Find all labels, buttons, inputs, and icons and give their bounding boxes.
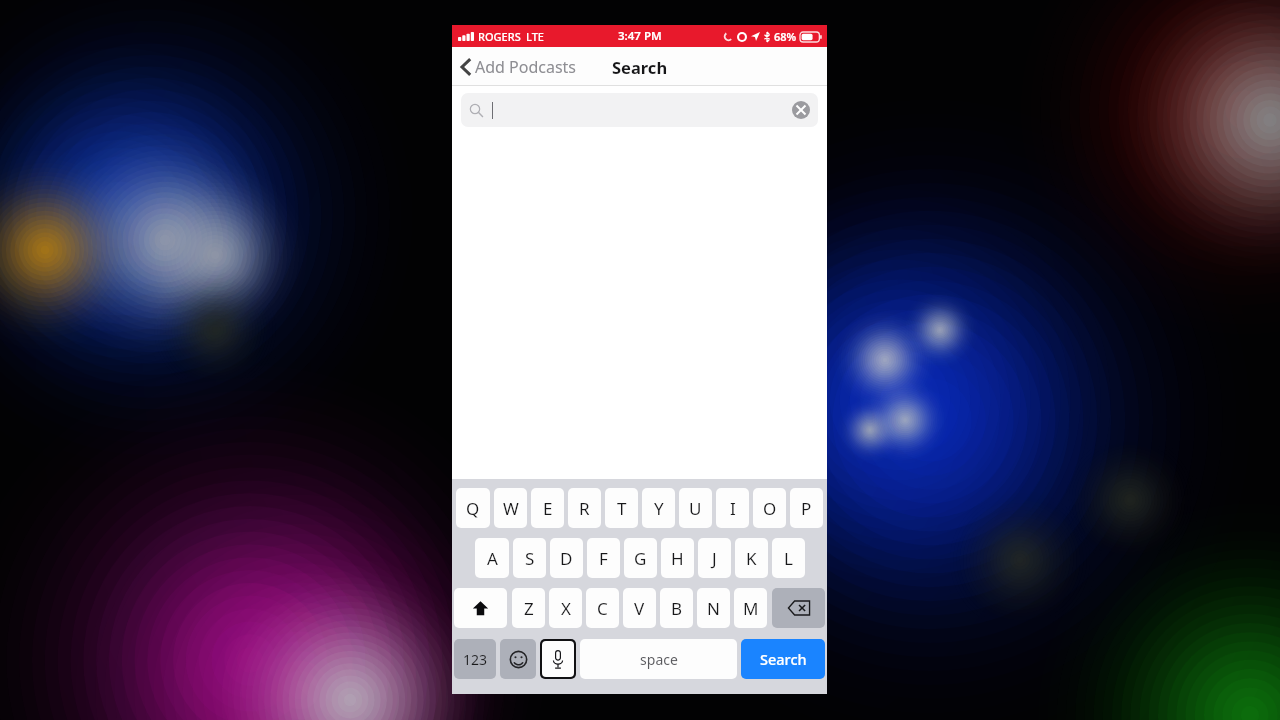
button[interactable]: Q [456, 488, 490, 528]
button[interactable]: N [697, 588, 730, 628]
button[interactable]: W [494, 488, 527, 528]
button[interactable]: R [568, 488, 601, 528]
button[interactable]: Add Podcasts [452, 47, 585, 86]
button[interactable]: I [716, 488, 749, 528]
button[interactable]: Y [642, 488, 675, 528]
staticText: Z [524, 597, 534, 620]
staticText: ROGERS [478, 29, 521, 44]
button[interactable]: B [660, 588, 693, 628]
button[interactable]: M [734, 588, 767, 628]
button[interactable]: H [661, 538, 694, 578]
staticText: G [634, 547, 647, 570]
button[interactable]: P [790, 488, 823, 528]
button[interactable]: O [753, 488, 786, 528]
button[interactable]: L [772, 538, 805, 578]
button[interactable]: space [580, 639, 737, 679]
staticText: U [689, 497, 702, 520]
staticText: F [599, 547, 608, 570]
button[interactable]: E [531, 488, 564, 528]
button[interactable]: Search [741, 639, 825, 679]
button[interactable]: G [624, 538, 657, 578]
button[interactable]: Shift [454, 588, 507, 628]
staticText: L [784, 547, 793, 570]
button[interactable]: 123 [454, 639, 496, 679]
staticText: Search [760, 649, 807, 669]
staticText: 123 [463, 650, 488, 669]
button[interactable]: Clear search text [461, 93, 818, 127]
staticText: Add Podcasts [475, 56, 577, 78]
staticText: Q [466, 497, 480, 520]
button[interactable]: D [550, 538, 583, 578]
button[interactable]: Z [512, 588, 545, 628]
staticText: 3:47 PM [618, 28, 662, 44]
button[interactable]: Emoji keyboard [500, 639, 536, 679]
staticText: A [487, 547, 498, 570]
staticText: Search [612, 56, 668, 78]
staticText: V [634, 597, 645, 620]
staticText: O [763, 497, 777, 520]
staticText: C [597, 597, 608, 620]
staticText: M [743, 597, 759, 620]
button[interactable]: V [623, 588, 656, 628]
staticText: I [730, 497, 736, 520]
staticText: K [746, 547, 757, 570]
button[interactable]: X [549, 588, 582, 628]
staticText: 68% [774, 29, 797, 44]
button[interactable]: Dictation [542, 641, 574, 677]
button[interactable]: S [513, 538, 546, 578]
button[interactable]: C [586, 588, 619, 628]
button[interactable]: J [698, 538, 731, 578]
button[interactable]: T [605, 488, 638, 528]
staticText: W [503, 497, 519, 520]
staticText: X [561, 597, 571, 620]
staticText: H [671, 547, 684, 570]
staticText: N [707, 597, 720, 620]
button[interactable]: A [475, 538, 509, 578]
staticText: T [617, 497, 627, 520]
button[interactable]: Backspace [772, 588, 825, 628]
button[interactable]: F [587, 538, 620, 578]
staticText: B [671, 597, 683, 620]
staticText: space [640, 650, 678, 669]
button[interactable]: Clear search text [792, 101, 810, 119]
button[interactable]: K [735, 538, 768, 578]
staticText: LTE [526, 29, 544, 44]
staticText: J [712, 547, 717, 570]
staticText: E [543, 497, 553, 520]
staticText: S [525, 547, 535, 570]
staticText: P [801, 497, 812, 520]
staticText: Y [654, 497, 664, 520]
button[interactable]: U [679, 488, 712, 528]
staticText: R [579, 497, 590, 520]
staticText: D [560, 547, 573, 570]
